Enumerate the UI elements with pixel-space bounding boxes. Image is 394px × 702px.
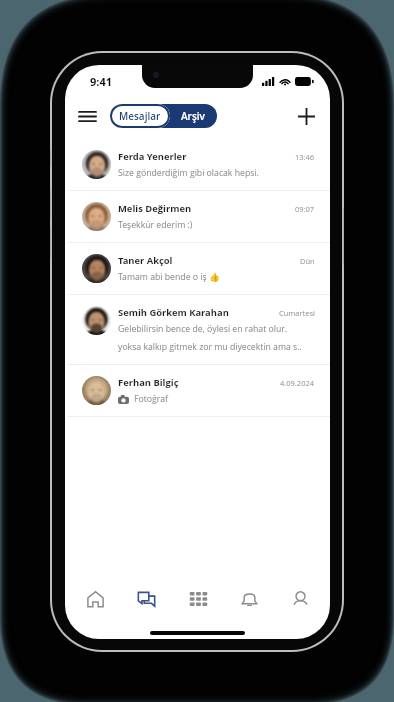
button[interactable]: Semih Görkem Karahan: [65, 295, 330, 364]
staticText: 13:46: [295, 152, 315, 162]
staticText: Ferhan Bilgiç: [118, 376, 179, 389]
staticText: Tamam abi bende o iş 👍: [118, 271, 220, 283]
button[interactable]: Mesajlar: [110, 104, 170, 128]
staticText: 09:07: [295, 204, 315, 214]
staticText: Taner Akçol: [118, 254, 173, 267]
staticText: Ferda Yenerler: [118, 150, 187, 163]
staticText: Size gönderdiğim gibi olacak hepsi.: [118, 167, 259, 179]
staticText: 4.09.2024: [280, 378, 315, 388]
button[interactable]: Home: [74, 578, 116, 620]
button[interactable]: Menu: [74, 103, 100, 129]
button[interactable]: New message: [292, 102, 320, 130]
staticText: 9:41: [90, 74, 112, 89]
staticText: Teşekkür ederim :): [118, 219, 193, 231]
button[interactable]: Profile: [279, 578, 321, 620]
button[interactable]: Melis Değirmen: [65, 191, 330, 242]
staticText: Melis Değirmen: [118, 202, 192, 215]
button[interactable]: Taner Akçol: [65, 243, 330, 294]
staticText: Semih Görkem Karahan: [118, 306, 229, 319]
staticText: Cumartesi: [279, 308, 315, 318]
button[interactable]: Messages: [125, 578, 167, 620]
staticText: Dün: [300, 256, 315, 266]
staticText: Fotoğraf: [134, 393, 168, 405]
button[interactable]: Apps: [177, 578, 219, 620]
staticText: Mesajlar: [119, 109, 161, 123]
staticText: Arşiv: [181, 109, 205, 123]
staticText: yoksa kalkıp gitmek zor mu diyecektin am…: [118, 341, 302, 353]
staticText: Gelebilirsin bence de, öylesi en rahat o…: [118, 323, 288, 335]
button[interactable]: Notifications: [228, 578, 270, 620]
button[interactable]: Arşiv: [169, 104, 217, 128]
button[interactable]: Ferhan Bilgiç: [65, 365, 330, 416]
button[interactable]: Ferda Yenerler: [65, 139, 330, 190]
